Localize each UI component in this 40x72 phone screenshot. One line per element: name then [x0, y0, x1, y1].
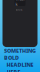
staticText: Artist: [15, 8, 22, 11]
staticText: Track: [15, 0, 24, 7]
staticText: HEADLINE HERE: [6, 61, 33, 72]
staticText: SOMETHING BOLD: [4, 47, 36, 61]
